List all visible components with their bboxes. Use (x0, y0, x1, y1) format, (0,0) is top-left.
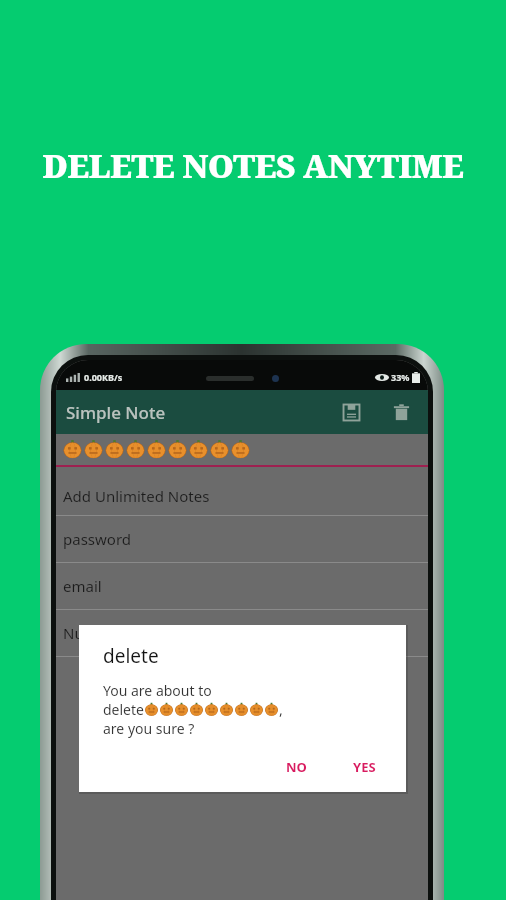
staticText: Simple Note (66, 401, 166, 424)
staticText: YES (353, 758, 376, 776)
staticText: delete (103, 700, 144, 719)
staticText: delete (103, 643, 159, 669)
button[interactable]: Delete (384, 395, 418, 429)
staticText: password (63, 529, 131, 549)
button[interactable]: NO (274, 752, 319, 782)
button[interactable]: password (56, 516, 428, 563)
button[interactable]: YES (341, 752, 388, 782)
staticText: 33% (391, 371, 410, 383)
button[interactable]: Number (56, 610, 428, 657)
staticText: You are about to (103, 681, 212, 700)
button[interactable]: email (56, 563, 428, 610)
staticText: Add Unlimited Notes (63, 486, 210, 506)
staticText: DELETE NOTES ANYTIME (42, 144, 464, 188)
staticText: , (279, 700, 283, 719)
staticText: Number (63, 623, 122, 643)
button[interactable]: Save (334, 395, 368, 429)
staticText: NO (286, 758, 307, 776)
button[interactable]: Add Unlimited Notes (56, 476, 428, 516)
staticText: email (63, 576, 102, 596)
staticText: are you sure ? (103, 719, 195, 738)
staticText: 0.00KB/s (84, 371, 123, 383)
